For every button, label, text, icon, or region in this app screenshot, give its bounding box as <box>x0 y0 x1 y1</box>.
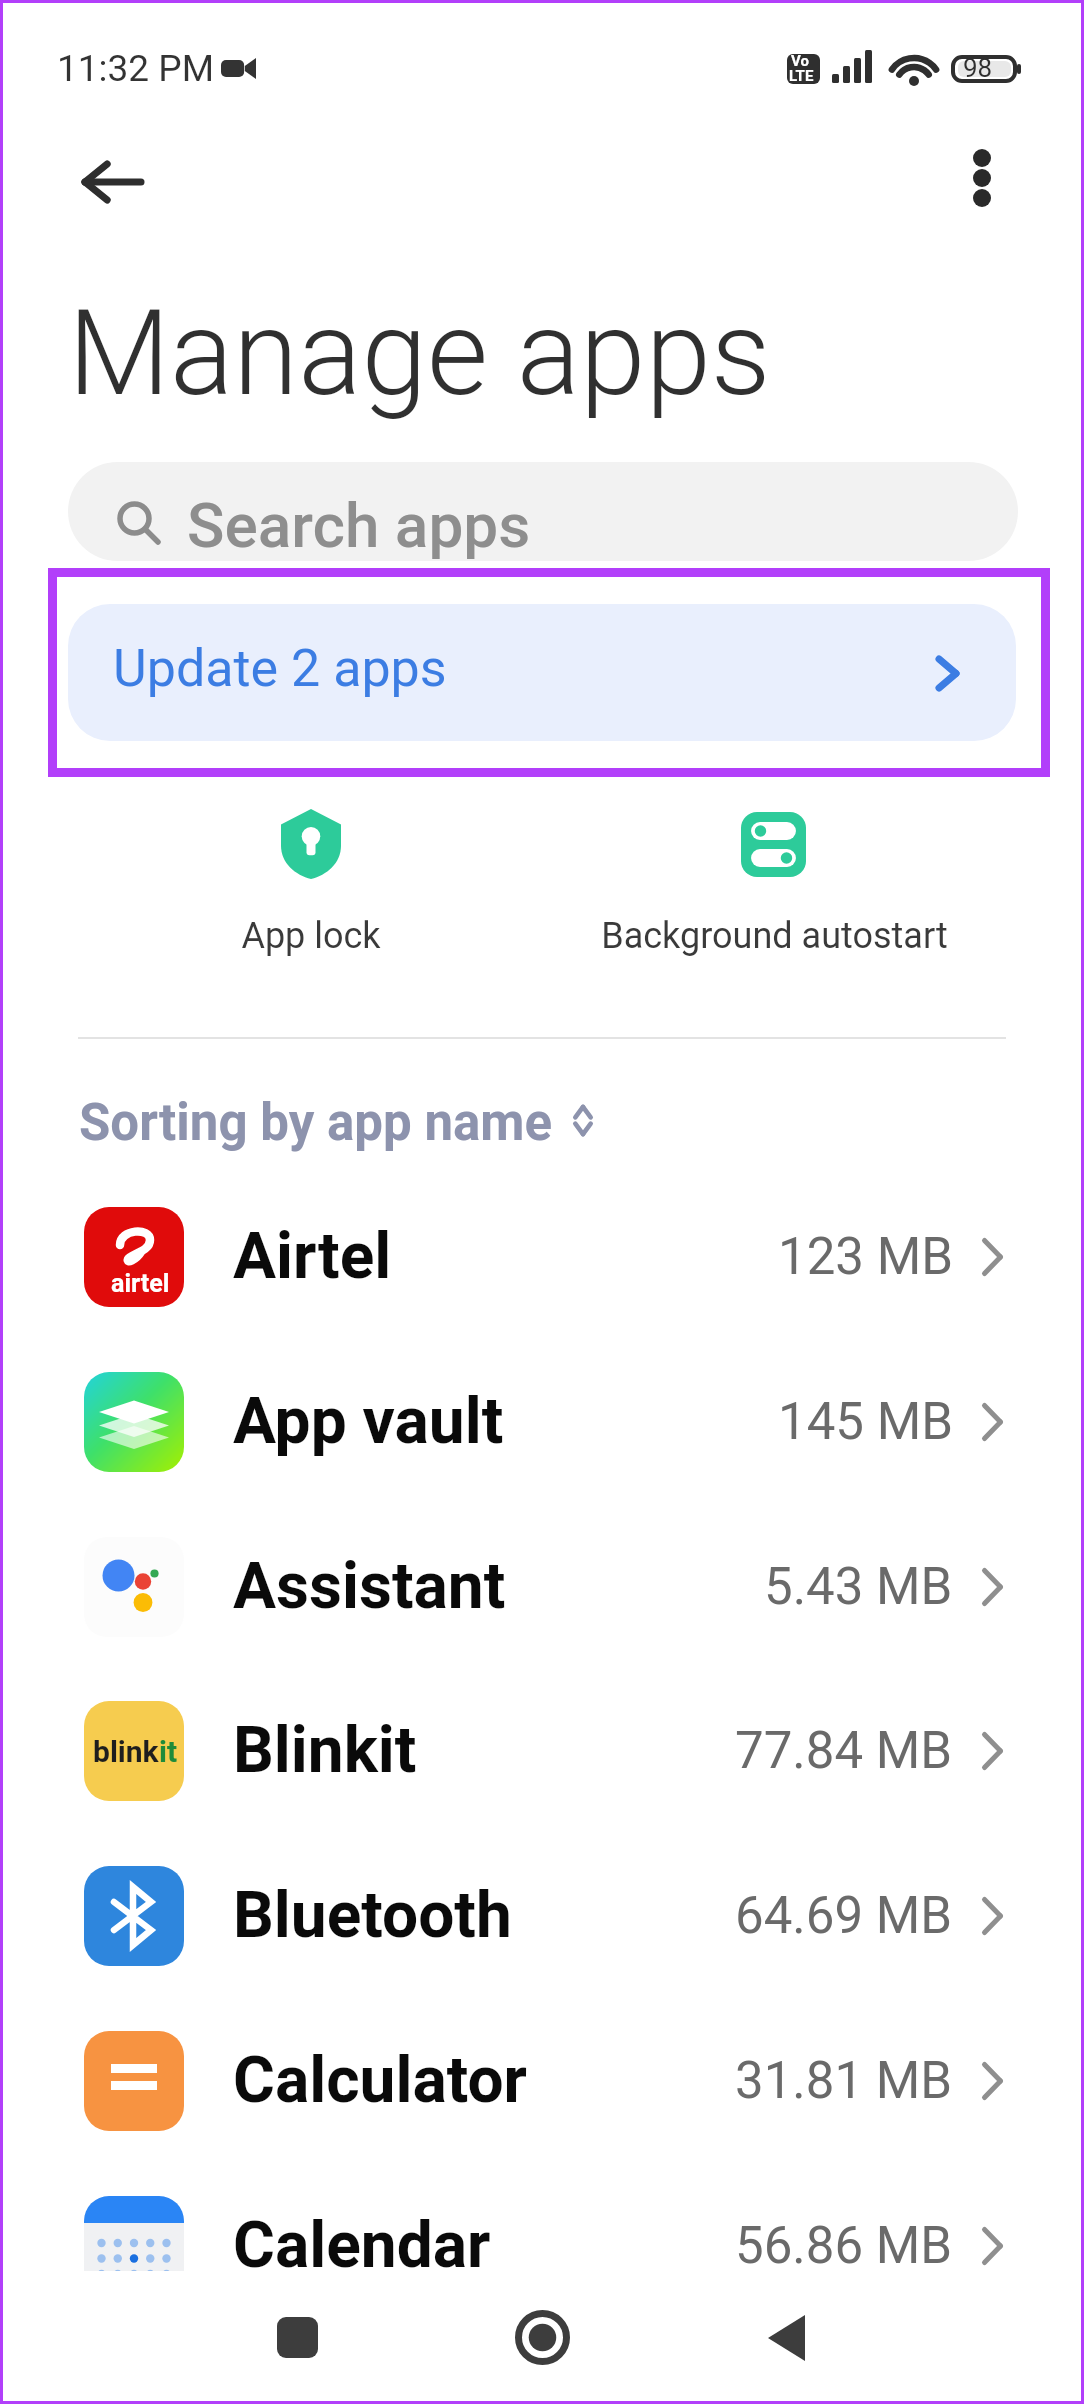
staticText: 123 MB <box>778 1227 953 1287</box>
staticText: Airtel <box>233 1219 392 1294</box>
staticText: Background autostart <box>552 915 997 957</box>
staticText: Search apps <box>187 489 531 561</box>
button[interactable]: More options <box>930 126 1034 230</box>
button[interactable]: Search apps <box>68 462 1018 561</box>
button[interactable]: Bluetooth <box>0 1833 1084 1998</box>
staticText: Calendar <box>233 2208 491 2283</box>
button[interactable]: Back <box>56 126 168 238</box>
staticText: 11:32 PM <box>57 47 214 90</box>
staticText: Manage apps <box>68 285 771 423</box>
button[interactable]: Background autostart <box>552 790 997 980</box>
staticText: App lock <box>130 915 492 957</box>
staticText: Assistant <box>233 1549 506 1624</box>
button[interactable]: App vault <box>0 1339 1084 1504</box>
staticText: 31.81 MB <box>735 2051 953 2111</box>
staticText: Bluetooth <box>233 1878 512 1953</box>
staticText: Update 2 apps <box>113 638 447 699</box>
button[interactable]: Home <box>460 2271 624 2404</box>
staticText: App vault <box>233 1384 504 1459</box>
staticText: 5.43 MB <box>764 1557 953 1617</box>
button[interactable]: Sorting by app name <box>79 1088 593 1158</box>
button[interactable]: Update 2 apps <box>68 604 1016 741</box>
staticText: Vo <box>791 52 809 70</box>
staticText: airtel <box>111 1269 170 1298</box>
button[interactable]: Assistant <box>0 1504 1084 1669</box>
staticText: LTE <box>789 67 814 85</box>
staticText: Sorting by app name <box>79 1093 553 1153</box>
staticText: 98 <box>963 53 993 83</box>
staticText: 64.69 MB <box>735 1886 953 1946</box>
button[interactable]: blink <box>0 1668 1084 1833</box>
button[interactable]: Calendar <box>0 2163 1084 2328</box>
button[interactable]: Recents <box>215 2271 379 2404</box>
button[interactable]: airtel <box>0 1174 1084 1339</box>
staticText: Blinkit <box>233 1713 417 1788</box>
staticText: blink <box>93 1734 159 1769</box>
staticText: 56.86 MB <box>735 2216 953 2276</box>
staticText: 77.84 MB <box>735 1721 953 1781</box>
staticText: 145 MB <box>778 1392 953 1452</box>
staticText: Calculator <box>233 2043 527 2118</box>
button[interactable]: App lock <box>130 790 492 980</box>
staticText: it <box>159 1734 178 1769</box>
button[interactable]: Calculator <box>0 1998 1084 2163</box>
button[interactable]: Back <box>704 2271 868 2404</box>
